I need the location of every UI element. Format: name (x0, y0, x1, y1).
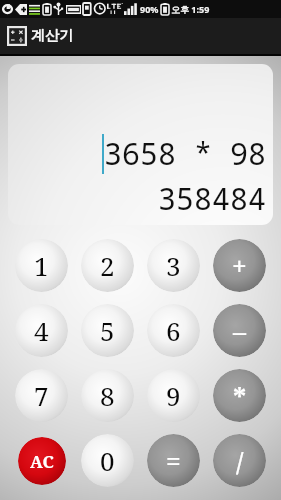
staticText: 1 (34, 248, 49, 283)
staticText: 90% (140, 3, 159, 15)
staticText: 오후 1:59 (171, 3, 210, 15)
staticText: 0 (100, 443, 115, 478)
staticText: * (233, 378, 247, 413)
staticText: 5 (100, 313, 115, 348)
staticText: – (233, 313, 247, 348)
button[interactable]: 3 (147, 239, 200, 292)
staticText: 4 (34, 313, 49, 348)
staticText: 2 (100, 248, 115, 283)
button[interactable]: 2 (81, 239, 134, 292)
button[interactable]: Minus (213, 304, 266, 357)
staticText: 358484 (8, 178, 266, 219)
staticText: AC (30, 450, 54, 473)
staticText: 8 (100, 378, 115, 413)
button[interactable]: Plus (213, 239, 266, 292)
button[interactable]: 9 (147, 369, 200, 422)
staticText: 3658 * 98 (104, 133, 266, 174)
staticText: 7 (34, 378, 49, 413)
button[interactable]: 5 (81, 304, 134, 357)
button[interactable]: Multiply (213, 369, 266, 422)
button[interactable]: All clear (18, 437, 66, 485)
staticText: 3 (166, 248, 181, 283)
button[interactable]: Divide (213, 434, 266, 487)
staticText: + (232, 248, 247, 283)
staticText: / (236, 443, 244, 478)
button[interactable]: 7 (15, 369, 68, 422)
button[interactable]: 0 (81, 434, 134, 487)
button[interactable]: 6 (147, 304, 200, 357)
button[interactable]: Equals (147, 434, 200, 487)
button[interactable]: 1 (15, 239, 68, 292)
staticText: 계산기 (31, 27, 73, 45)
staticText: 9 (166, 378, 181, 413)
button[interactable]: 3658 * 98 (8, 64, 273, 225)
button[interactable]: 8 (81, 369, 134, 422)
button[interactable]: 4 (15, 304, 68, 357)
staticText: = (166, 443, 181, 478)
staticText: 6 (166, 313, 181, 348)
